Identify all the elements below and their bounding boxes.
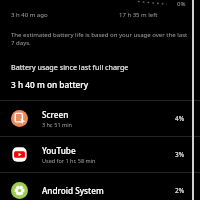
staticText: 3 h 40 m on battery: [11, 79, 89, 90]
staticText: 3 hr, 51 min: [42, 121, 72, 128]
staticText: 0%: [177, 0, 186, 8]
staticText: 17 h 35 m left: [119, 11, 158, 19]
button[interactable]: Android System: [0, 173, 200, 200]
staticText: YouTube: [42, 145, 76, 156]
staticText: 2%: [175, 186, 185, 195]
staticText: Screen: [42, 109, 69, 120]
staticText: 3 h 40 m ago: [11, 11, 48, 19]
staticText: The estimated battery life is based on y…: [11, 31, 188, 47]
staticText: Used for 1 hr, 58 min: [42, 157, 96, 164]
staticText: Battery usage since last full charge: [11, 62, 129, 72]
staticText: 3%: [175, 150, 185, 159]
button[interactable]: Screen: [0, 101, 200, 136]
button[interactable]: YouTube: [0, 137, 200, 172]
staticText: 4%: [175, 114, 185, 123]
staticText: Android System: [42, 185, 104, 196]
